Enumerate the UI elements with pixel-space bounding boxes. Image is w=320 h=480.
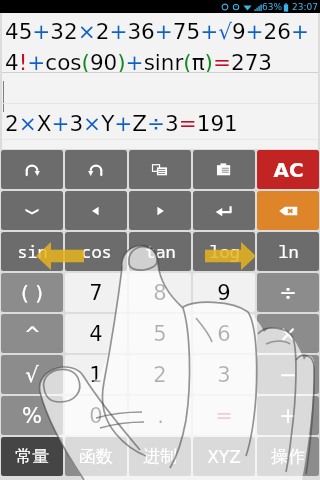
button[interactable]: . [129, 396, 191, 435]
staticText: XYZ [207, 447, 241, 467]
staticText: 6 [217, 322, 231, 346]
staticText: √ [25, 363, 39, 387]
button[interactable]: 5 [129, 314, 191, 353]
staticText: 进制 [143, 446, 177, 467]
staticText: log [209, 240, 240, 263]
staticText: 2 [153, 363, 167, 387]
staticText: ( ) [21, 281, 43, 304]
button[interactable]: 8 [129, 273, 191, 312]
button[interactable]: ÷ [257, 273, 319, 312]
button[interactable]: Paste [193, 150, 255, 189]
staticText: 3 [217, 363, 231, 387]
staticText: 8 [153, 281, 167, 305]
button[interactable]: 9 [193, 273, 255, 312]
staticText: ^ [24, 322, 41, 345]
staticText: 常量 [15, 446, 49, 467]
button[interactable]: XYZ [193, 437, 255, 476]
staticText: sin [17, 240, 48, 263]
button[interactable]: + [257, 396, 319, 435]
button[interactable]: Copy [129, 150, 191, 189]
staticText: ln [278, 240, 299, 263]
button[interactable]: Redo [65, 150, 127, 189]
staticText: 函数 [79, 446, 113, 467]
button[interactable]: 进制 [129, 437, 191, 476]
staticText: 1 [89, 363, 103, 387]
button[interactable]: 4 [65, 314, 127, 353]
button[interactable]: × [257, 314, 319, 353]
button[interactable]: ln [257, 232, 319, 271]
staticText: + [279, 404, 297, 428]
button[interactable]: sin [1, 232, 63, 271]
button[interactable]: 2 [129, 355, 191, 394]
staticText: . [157, 404, 164, 428]
button[interactable]: Undo [1, 150, 63, 189]
button[interactable]: Enter [193, 191, 255, 230]
staticText: AC [273, 158, 304, 181]
staticText: ÷ [279, 281, 297, 305]
button[interactable]: − [257, 355, 319, 394]
button[interactable]: 函数 [65, 437, 127, 476]
button[interactable]: √ [1, 355, 63, 394]
button[interactable]: ( ) [1, 273, 63, 312]
button[interactable]: 2×X+3×Y+Z÷3=191 [2, 73, 318, 149]
button[interactable]: cos [65, 232, 127, 271]
staticText: % [22, 404, 42, 428]
button[interactable]: 操作 [257, 437, 319, 476]
staticText: 操作 [271, 446, 305, 467]
button[interactable]: 0 [65, 396, 127, 435]
button[interactable]: 1 [65, 355, 127, 394]
staticText: 45+32×2+36+75+√9+26+ 4!+cos(90)+sinr(π)=… [5, 19, 309, 75]
staticText: 2×X+3×Y+Z÷3=191 [5, 111, 238, 136]
staticText: 23:07 [292, 2, 318, 12]
staticText: tan [145, 240, 176, 263]
button[interactable]: AC [257, 150, 319, 189]
button[interactable]: 45+32×2+36+75+√9+26+ 4!+cos(90)+sinr(π)=… [2, 13, 318, 72]
button[interactable]: Collapse [1, 191, 63, 230]
staticText: 63% [262, 2, 283, 12]
button[interactable]: log [193, 232, 255, 271]
staticText: × [279, 322, 297, 346]
staticText: 0 [89, 404, 103, 428]
button[interactable]: 3 [193, 355, 255, 394]
button[interactable]: Move left [65, 191, 127, 230]
button[interactable]: = [193, 396, 255, 435]
button[interactable]: ^ [1, 314, 63, 353]
button[interactable]: 常量 [1, 437, 63, 476]
staticText: 7 [89, 281, 103, 305]
button[interactable]: % [1, 396, 63, 435]
button[interactable]: Delete [257, 191, 319, 230]
staticText: 5 [153, 322, 167, 346]
staticText: 4 [89, 322, 103, 346]
button[interactable]: Move right [129, 191, 191, 230]
button[interactable]: 7 [65, 273, 127, 312]
staticText: = [215, 404, 233, 428]
button[interactable]: 6 [193, 314, 255, 353]
staticText: − [279, 363, 297, 387]
button[interactable]: tan [129, 232, 191, 271]
staticText: cos [81, 240, 112, 263]
staticText: 9 [217, 281, 231, 305]
